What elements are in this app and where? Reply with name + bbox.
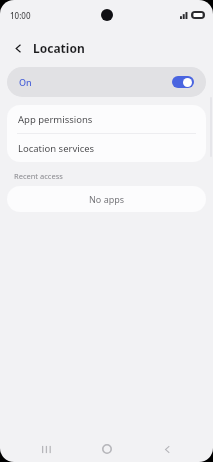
button[interactable]: Location toggle, on [172,76,194,88]
staticText: No apps [89,193,125,205]
staticText: 10:00 [10,10,31,21]
button[interactable]: Back [152,436,182,462]
staticText: Location services [18,142,95,155]
staticText: On [19,76,32,88]
staticText: Location [33,40,85,56]
button[interactable]: Back [8,38,28,58]
button[interactable]: Location services [7,134,206,162]
button[interactable]: On [7,67,206,97]
button[interactable]: Recent apps [31,436,61,462]
staticText: App permissions [18,113,93,126]
staticText: Recent access [14,171,63,181]
button[interactable]: No apps [7,186,206,212]
button[interactable]: Home [92,436,122,462]
button[interactable]: App permissions [7,105,206,133]
